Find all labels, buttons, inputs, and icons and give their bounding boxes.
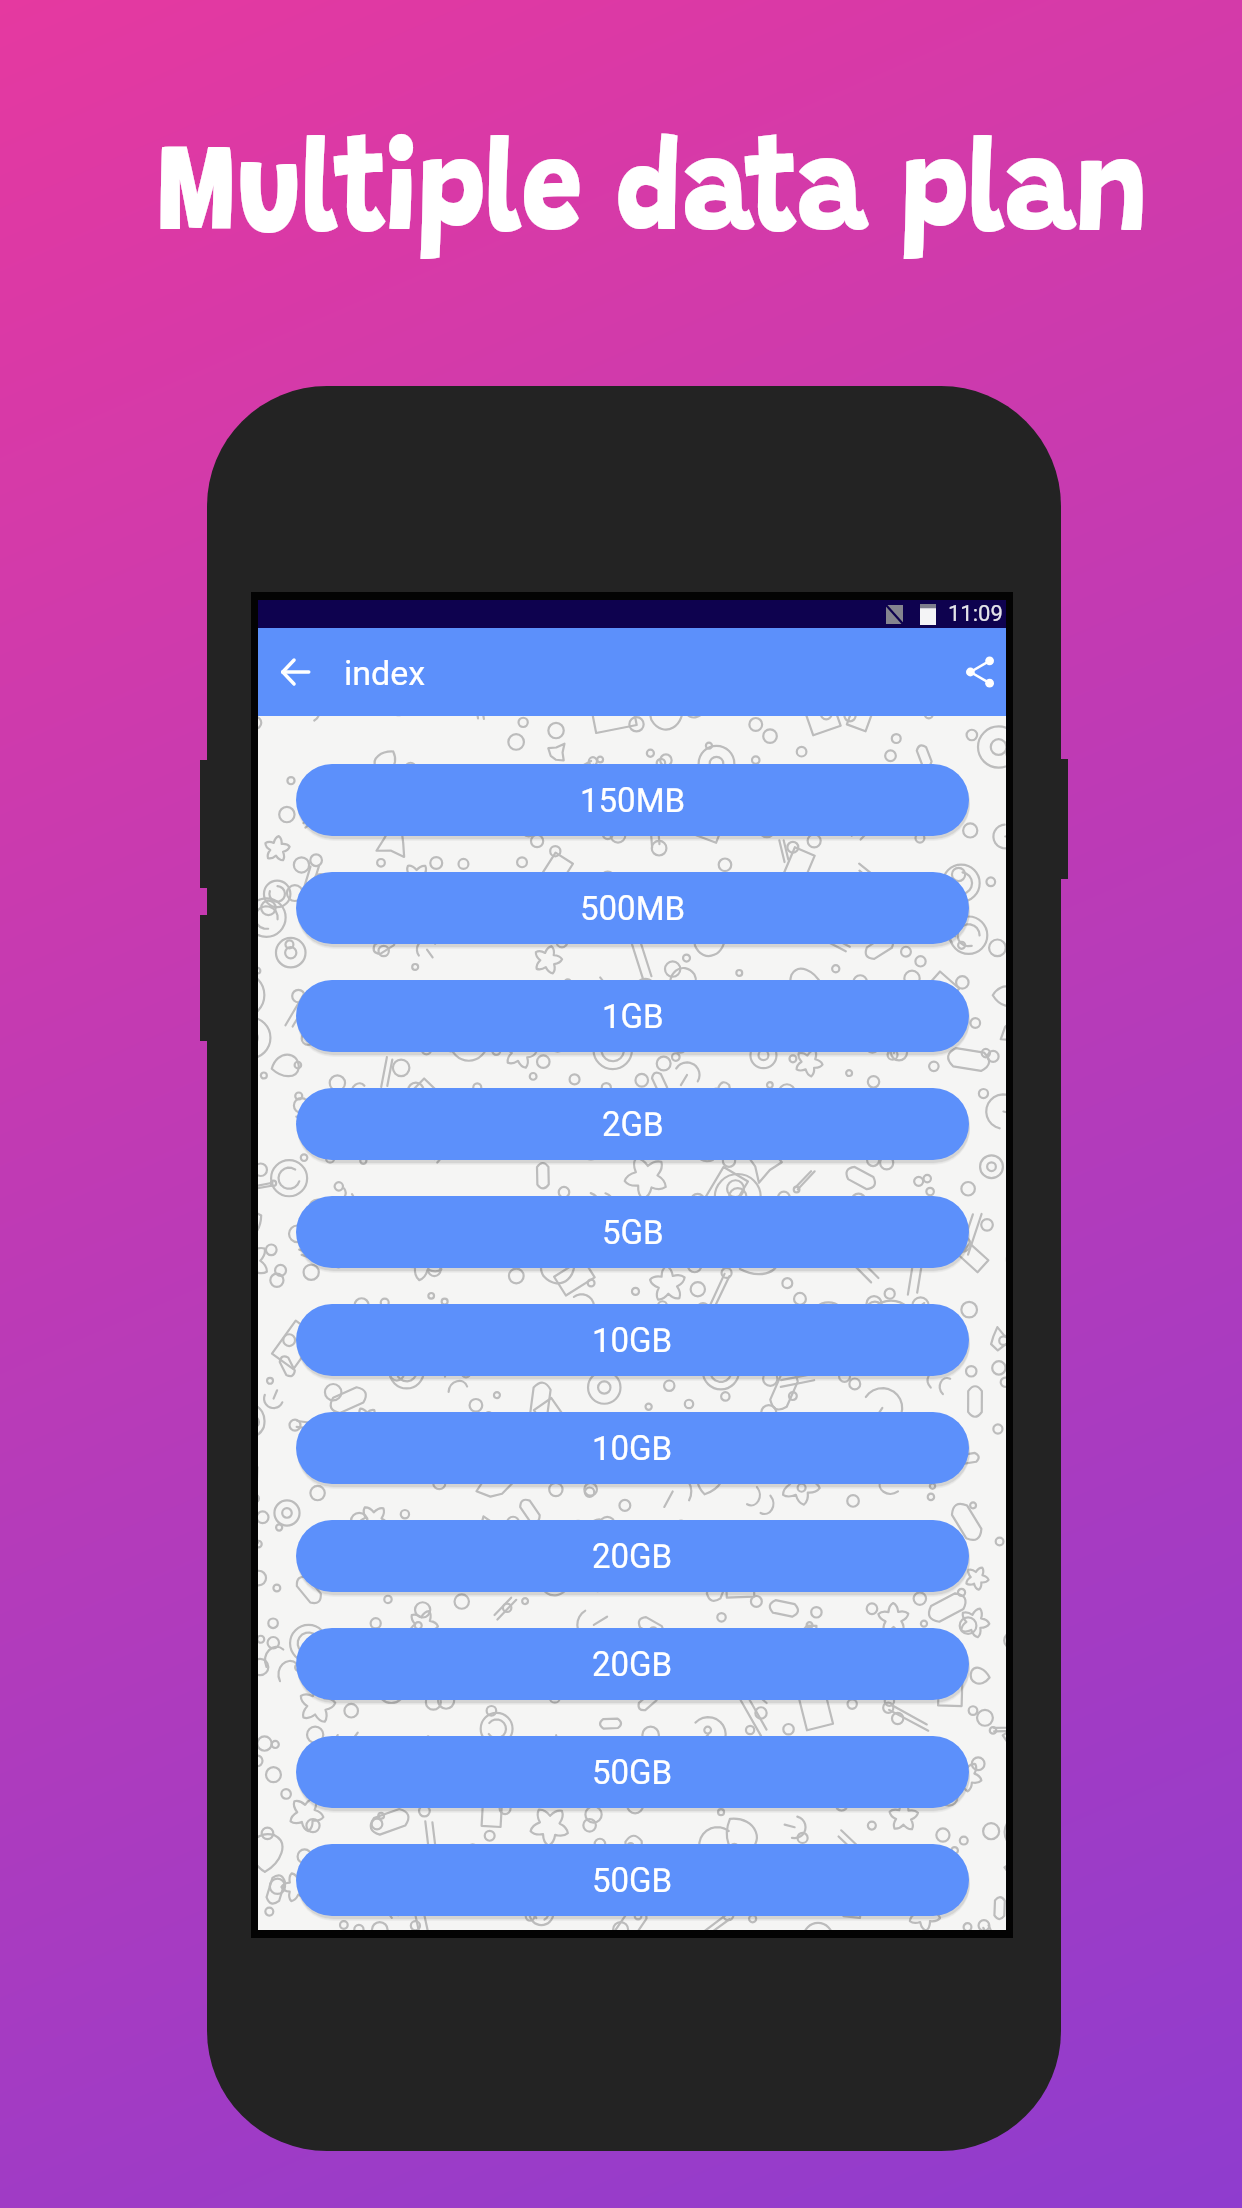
button[interactable]: Back — [266, 643, 324, 701]
button[interactable]: 5GB — [296, 1196, 969, 1268]
button[interactable]: 2GB — [296, 1088, 969, 1160]
button[interactable]: 50GB — [296, 1736, 969, 1808]
button[interactable]: Share — [951, 643, 1006, 701]
button[interactable]: 20GB — [296, 1628, 969, 1700]
staticText: 50GB — [592, 1861, 673, 1900]
staticText: 500MB — [580, 889, 686, 928]
staticText: 1GB — [602, 997, 664, 1036]
staticText: 150MB — [580, 781, 686, 820]
staticText: index — [344, 653, 426, 693]
button[interactable]: 1GB — [296, 980, 969, 1052]
staticText: 20GB — [592, 1645, 673, 1684]
staticText: 10GB — [592, 1321, 673, 1360]
staticText: 10GB — [592, 1429, 673, 1468]
staticText: Multiple data plan — [31, 132, 1242, 263]
staticText: 20GB — [592, 1537, 673, 1576]
button[interactable]: 10GB — [296, 1304, 969, 1376]
button[interactable]: 150MB — [296, 764, 969, 836]
staticText: 5GB — [602, 1213, 664, 1252]
button[interactable]: 10GB — [296, 1412, 969, 1484]
staticText: 11:09 — [948, 601, 1003, 627]
button[interactable]: 20GB — [296, 1520, 969, 1592]
staticText: 2GB — [602, 1105, 664, 1144]
button[interactable]: 500MB — [296, 872, 969, 944]
button[interactable]: 50GB — [296, 1844, 969, 1916]
staticText: 50GB — [592, 1753, 673, 1792]
